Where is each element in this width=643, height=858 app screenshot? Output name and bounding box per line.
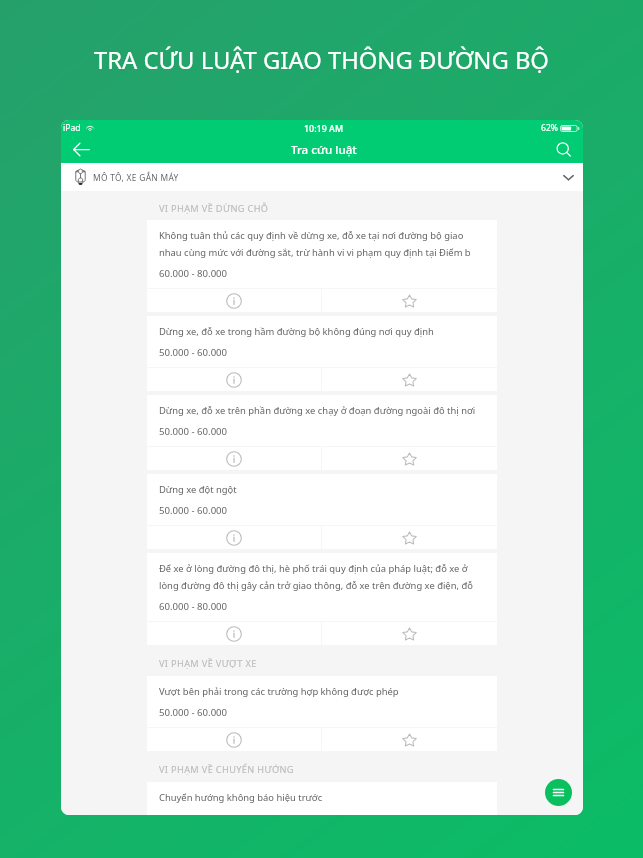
staticText: Dừng xe đột ngột <box>159 483 237 496</box>
button[interactable]: Thông tin chi tiết <box>147 289 321 312</box>
button[interactable]: Tìm kiếm <box>553 139 575 161</box>
button[interactable]: Thông tin chi tiết <box>147 447 321 470</box>
staticText: Không tuân thủ các quy định về dừng xe, … <box>159 229 485 259</box>
staticText: iPad <box>63 122 81 134</box>
button[interactable]: Đánh dấu yêu thích <box>322 368 497 391</box>
button[interactable]: Đánh dấu yêu thích <box>322 728 497 751</box>
button[interactable]: Chuyển hướng không báo hiệu trước <box>147 782 497 815</box>
button[interactable]: Để xe ở lòng đường đô thị, hè phố trái q… <box>147 553 497 645</box>
staticText: MÔ TÔ, XE GẮN MÁY <box>93 172 179 183</box>
staticText: Để xe ở lòng đường đô thị, hè phố trái q… <box>159 562 485 592</box>
staticText: Vượt bên phải trong các trường hợp không… <box>159 685 399 698</box>
staticText: VI PHẠM VỀ DỪNG CHỖ <box>159 202 269 215</box>
button[interactable]: Dừng xe, đỗ xe trong hầm đường bộ không … <box>147 316 497 391</box>
staticText: 60.000 - 80.000 <box>159 267 228 280</box>
staticText: 50.000 - 60.000 <box>159 706 228 719</box>
button[interactable]: Đánh dấu yêu thích <box>322 447 497 470</box>
staticText: Dừng xe, đỗ xe trên phần đường xe chạy ở… <box>159 404 476 417</box>
button[interactable]: Thông tin chi tiết <box>147 368 321 391</box>
button[interactable]: Quay lại <box>70 138 92 160</box>
button[interactable]: Thông tin chi tiết <box>147 728 321 751</box>
button[interactable]: Thông tin chi tiết <box>147 526 321 549</box>
button[interactable]: Vượt bên phải trong các trường hợp không… <box>147 676 497 751</box>
staticText: VI PHẠM VỀ CHUYỂN HƯỚNG <box>159 763 294 776</box>
button[interactable]: Đánh dấu yêu thích <box>322 622 497 645</box>
staticText: Tra cứu luật <box>291 142 357 158</box>
staticText: 50.000 - 60.000 <box>159 425 228 438</box>
button[interactable]: Thông tin chi tiết <box>147 622 321 645</box>
button[interactable]: Đánh dấu yêu thích <box>322 526 497 549</box>
button[interactable]: Dừng xe đột ngột <box>147 474 497 549</box>
staticText: 62% <box>541 122 558 134</box>
staticText: VI PHẠM VỀ VƯỢT XE <box>159 657 257 670</box>
button[interactable]: MÔ TÔ, XE GẮN MÁY <box>61 163 583 191</box>
staticText: 50.000 - 60.000 <box>159 346 228 359</box>
staticText: 50.000 - 60.000 <box>159 504 228 517</box>
button[interactable]: Menu <box>545 779 572 806</box>
button[interactable]: Không tuân thủ các quy định về dừng xe, … <box>147 220 497 312</box>
staticText: Chuyển hướng không báo hiệu trước <box>159 791 323 804</box>
staticText: 60.000 - 80.000 <box>159 600 228 613</box>
staticText: Dừng xe, đỗ xe trong hầm đường bộ không … <box>159 325 434 338</box>
staticText: 10:19 AM <box>304 122 344 134</box>
button[interactable]: Đánh dấu yêu thích <box>322 289 497 312</box>
staticText: TRA CỨU LUẬT GIAO THÔNG ĐƯỜNG BỘ <box>94 44 549 76</box>
button[interactable]: Dừng xe, đỗ xe trên phần đường xe chạy ở… <box>147 395 497 470</box>
